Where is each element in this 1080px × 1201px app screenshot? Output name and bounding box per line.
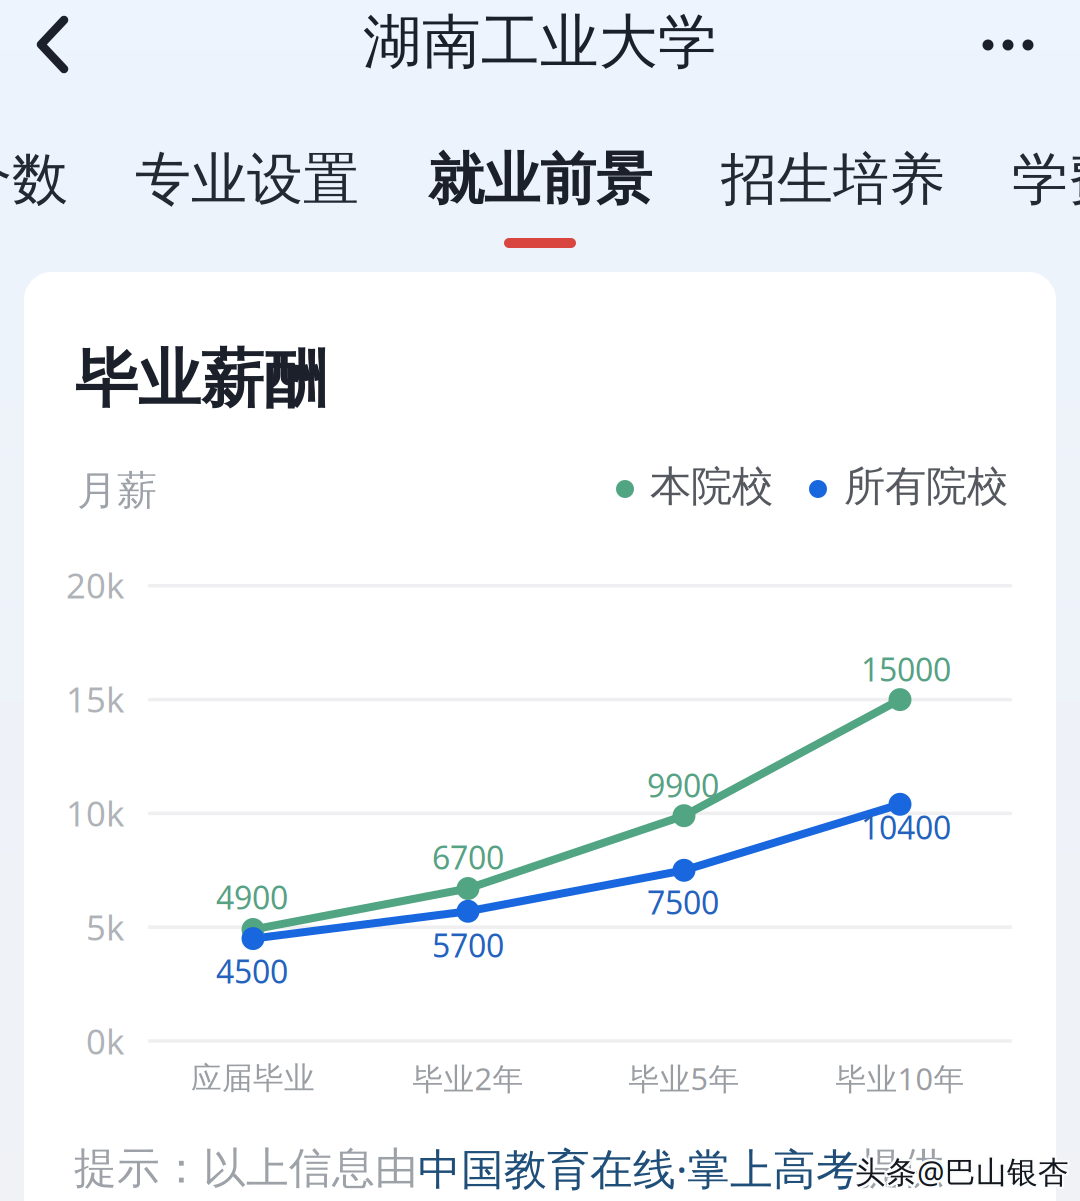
- staticText: 毕业薪酬: [75, 341, 327, 418]
- staticText: 中国教育在线·掌上高考: [418, 1140, 859, 1197]
- staticText: 应届毕业: [191, 1060, 315, 1097]
- staticText: 头条@巴山银杏: [855, 1151, 1069, 1192]
- staticText: 6700: [432, 836, 504, 878]
- button[interactable]: 专业设置: [0, 0, 420, 67]
- staticText: 专业设置: [135, 145, 359, 214]
- staticText: 招生培养: [721, 145, 945, 214]
- staticText: 15000: [861, 648, 951, 690]
- staticText: 湖南工业大学: [363, 6, 717, 78]
- staticText: 头条@巴山银杏: [853, 1153, 1067, 1194]
- staticText: 本院校: [650, 461, 773, 512]
- staticText: 头条@巴山银杏: [855, 1153, 1069, 1194]
- staticText: 5700: [432, 924, 504, 966]
- button[interactable]: Back: [0, 0, 1080, 1201]
- staticText: 4900: [216, 876, 288, 918]
- staticText: 提示：以上信息由: [74, 1142, 418, 1194]
- button[interactable]: 个数: [0, 0, 420, 67]
- staticText: 所有院校: [844, 461, 1008, 512]
- button[interactable]: 招生培养: [0, 0, 420, 67]
- staticText: 头条@巴山银杏: [857, 1149, 1071, 1190]
- staticText: 头条@巴山银杏: [857, 1153, 1071, 1194]
- button[interactable]: 就业前景: [0, 0, 420, 67]
- staticText: 15k: [66, 676, 125, 722]
- staticText: 头条@巴山银杏: [857, 1151, 1071, 1192]
- staticText: 10k: [66, 790, 125, 836]
- staticText: 4500: [216, 950, 288, 992]
- staticText: 学费: [1012, 145, 1080, 214]
- button[interactable]: 学费: [0, 0, 420, 67]
- staticText: 头条@巴山银杏: [855, 1149, 1069, 1190]
- staticText: 20k: [66, 562, 125, 608]
- staticText: 就业前景: [428, 145, 652, 214]
- button[interactable]: More options: [0, 0, 1080, 1201]
- staticText: 个数: [0, 145, 68, 214]
- staticText: 9900: [647, 764, 719, 806]
- staticText: 毕业2年: [412, 1058, 523, 1099]
- staticText: 头条@巴山银杏: [853, 1149, 1067, 1190]
- staticText: 10400: [861, 806, 951, 848]
- staticText: 7500: [647, 881, 719, 923]
- staticText: 头条@巴山银杏: [853, 1151, 1067, 1192]
- staticText: 毕业5年: [628, 1058, 739, 1099]
- staticText: 5k: [86, 904, 125, 950]
- staticText: 提供: [859, 1142, 945, 1194]
- staticText: 0k: [86, 1018, 125, 1064]
- staticText: 月薪: [77, 466, 157, 515]
- staticText: 毕业10年: [835, 1058, 964, 1099]
